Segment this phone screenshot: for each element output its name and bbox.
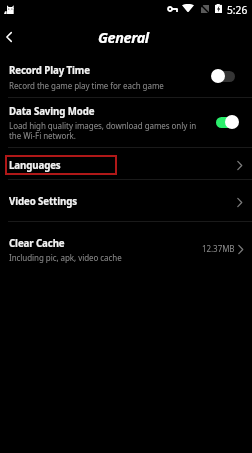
staticText: Video Settings — [9, 195, 77, 208]
button[interactable]: Clear Cache — [0, 223, 252, 267]
staticText: Load high quality images, download games… — [9, 120, 197, 141]
button[interactable]: Switch off — [210, 69, 238, 83]
staticText: Record the game play time for each game — [9, 80, 164, 91]
button[interactable]: Switch on — [210, 115, 238, 129]
staticText: 5:26 — [227, 3, 248, 17]
staticText: General — [98, 28, 149, 48]
staticText: Record Play Time — [9, 64, 90, 77]
staticText: Clear Cache — [9, 237, 65, 250]
staticText: Data Saving Mode — [9, 105, 95, 118]
staticText: Languages — [9, 159, 61, 172]
button[interactable]: Video Settings — [0, 181, 252, 223]
button[interactable]: Back — [0, 21, 18, 51]
button[interactable]: Record Play Time — [0, 55, 252, 98]
staticText: 12.37MB — [202, 243, 235, 254]
staticText: Including pic, apk, video cache — [9, 252, 122, 263]
button[interactable]: Data Saving Mode — [0, 99, 252, 148]
button[interactable]: Languages — [0, 149, 252, 180]
